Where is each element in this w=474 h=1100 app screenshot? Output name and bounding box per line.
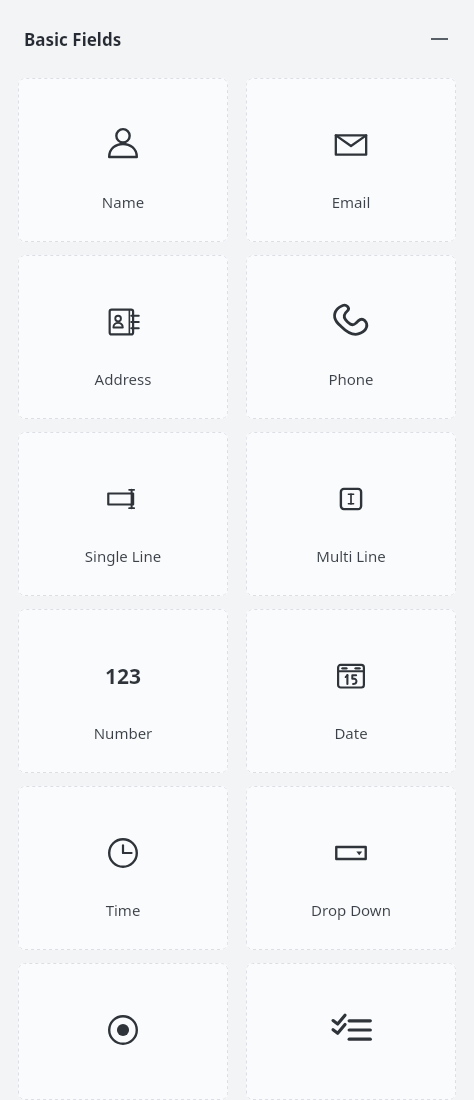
button[interactable]: Number: [18, 609, 228, 773]
button[interactable]: Drop Down: [246, 786, 456, 950]
staticText: Number: [18, 723, 228, 743]
staticText: Time: [18, 900, 228, 920]
button[interactable]: Single Line: [18, 432, 228, 596]
staticText: Date: [246, 723, 456, 743]
staticText: Email: [246, 192, 456, 212]
staticText: 123: [105, 662, 142, 691]
staticText: Basic Fields: [24, 28, 122, 51]
staticText: Single Line: [18, 546, 228, 566]
button[interactable]: Collapse section: [426, 26, 452, 52]
staticText: Multi Line: [246, 546, 456, 566]
button[interactable]: Email: [246, 78, 456, 242]
button[interactable]: Name: [18, 78, 228, 242]
button[interactable]: Address: [18, 255, 228, 419]
button[interactable]: Time: [18, 786, 228, 950]
staticText: Address: [18, 369, 228, 389]
staticText: Drop Down: [246, 900, 456, 920]
staticText: Phone: [246, 369, 456, 389]
button[interactable]: Phone: [246, 255, 456, 419]
button[interactable]: Radio Button: [18, 963, 228, 1100]
button[interactable]: Checklist: [246, 963, 456, 1100]
button[interactable]: Multi Line: [246, 432, 456, 596]
staticText: Name: [18, 192, 228, 212]
button[interactable]: Date: [246, 609, 456, 773]
